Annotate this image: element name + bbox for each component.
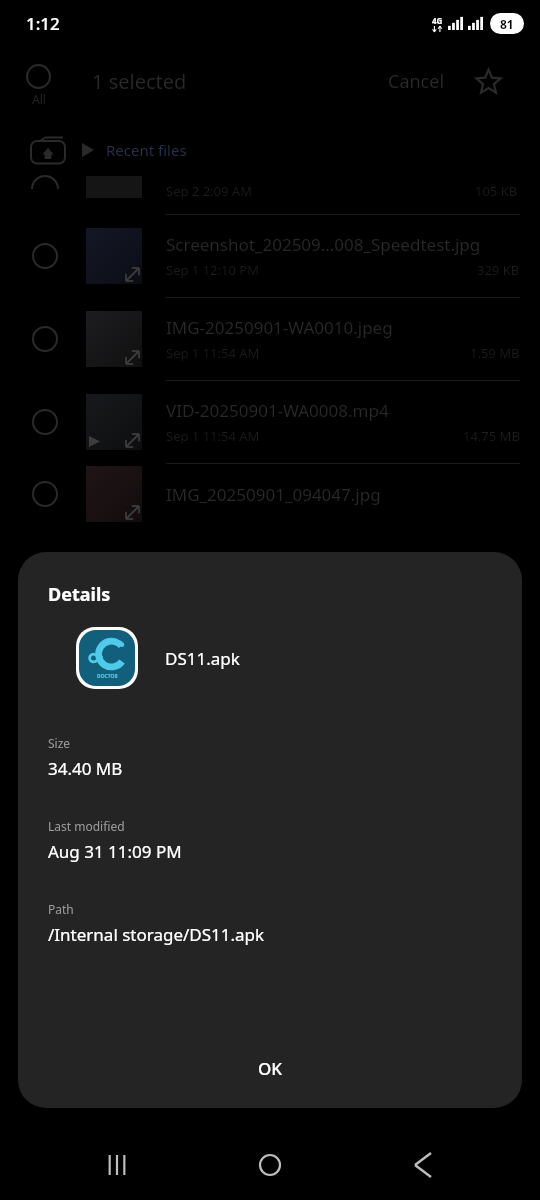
staticText: Sep 1 11:54 AM bbox=[166, 427, 260, 445]
staticText: Screenshot_202509…008_Speedtest.jpg bbox=[166, 233, 481, 256]
button[interactable]: IMG_20250901_094047.jpg bbox=[0, 464, 540, 524]
staticText: Aug 31 11:09 PM bbox=[48, 840, 182, 863]
staticText: Details bbox=[48, 582, 111, 607]
staticText: Last modified bbox=[48, 818, 125, 834]
button[interactable]: VID-20250901-WA0008.mp4 bbox=[0, 381, 540, 463]
staticText: Sep 1 12:10 PM bbox=[166, 261, 259, 279]
staticText: 105 KB bbox=[475, 182, 518, 200]
staticText: Sep 1 11:54 AM bbox=[166, 344, 260, 362]
staticText: 14.75 MB bbox=[463, 427, 520, 445]
button[interactable]: OK bbox=[18, 1028, 522, 1108]
button[interactable]: Screenshot_202509…008_Speedtest.jpg bbox=[0, 215, 540, 297]
staticText: 4G bbox=[432, 15, 443, 26]
staticText: OK bbox=[258, 1057, 283, 1080]
staticText: 1.59 MB bbox=[470, 344, 520, 362]
staticText: All bbox=[32, 91, 46, 107]
button[interactable]: Recent files bbox=[106, 140, 187, 160]
staticText: 81 bbox=[500, 16, 514, 32]
staticText: Sep 2 2:09 AM bbox=[166, 182, 252, 200]
staticText: Size bbox=[48, 735, 71, 751]
staticText: IMG_20250901_094047.jpg bbox=[166, 483, 381, 506]
staticText: IMG-20250901-WA0010.jpeg bbox=[166, 316, 393, 339]
button[interactable]: Home folder bbox=[30, 136, 66, 164]
button[interactable]: IMG-20250901-WA0010.jpeg bbox=[0, 298, 540, 380]
staticText: DOCTOR bbox=[97, 673, 118, 680]
button[interactable]: Cancel bbox=[388, 69, 445, 94]
button[interactable]: Favorite bbox=[466, 59, 510, 103]
button[interactable]: Home bbox=[234, 1130, 306, 1200]
staticText: 34.40 MB bbox=[48, 757, 123, 780]
staticText: 1 selected bbox=[92, 68, 187, 95]
staticText: /Internal storage/DS11.apk bbox=[48, 923, 265, 946]
button[interactable]: All bbox=[22, 60, 55, 111]
staticText: 1:12 bbox=[26, 12, 60, 35]
staticText: DS11.apk bbox=[165, 647, 240, 670]
staticText: 329 KB bbox=[477, 261, 520, 279]
staticText: Path bbox=[48, 901, 74, 917]
button[interactable]: Back bbox=[387, 1130, 459, 1200]
staticText: VID-20250901-WA0008.mp4 bbox=[166, 399, 389, 422]
button[interactable]: Recent apps bbox=[81, 1130, 153, 1200]
